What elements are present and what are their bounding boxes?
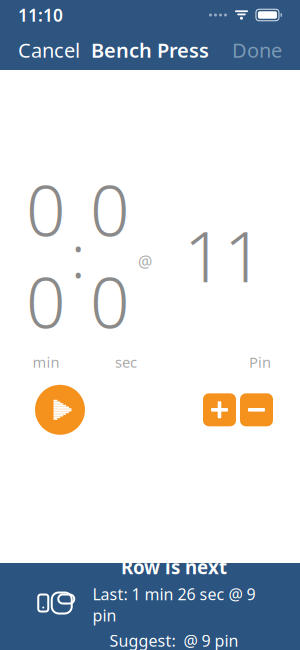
staticText: Row is next [121, 555, 227, 579]
staticText: Last: 1 min 26 sec @ 9 pin [92, 583, 255, 626]
button[interactable]: Increase pin [203, 393, 236, 426]
staticText: 11:10 [18, 3, 63, 26]
staticText: sec [115, 352, 137, 372]
button[interactable]: Decrease pin [240, 393, 273, 426]
button[interactable]: Row is next [0, 563, 300, 650]
button[interactable]: Start timer [35, 385, 85, 435]
staticText: Pin [249, 352, 271, 372]
staticText: Done [232, 37, 282, 63]
staticText: 00 [26, 163, 66, 347]
staticText: Suggest: @ 9 pin [109, 630, 238, 650]
staticText: Cancel [18, 37, 80, 63]
staticText: 00 [90, 163, 130, 347]
button[interactable]: Done [226, 30, 288, 70]
staticText: min [32, 352, 59, 372]
staticText: : [71, 216, 85, 294]
staticText: @ [138, 251, 152, 272]
button[interactable]: Cancel [12, 30, 86, 70]
staticText: 11 [184, 209, 264, 301]
staticText: Bench Press [91, 37, 209, 63]
